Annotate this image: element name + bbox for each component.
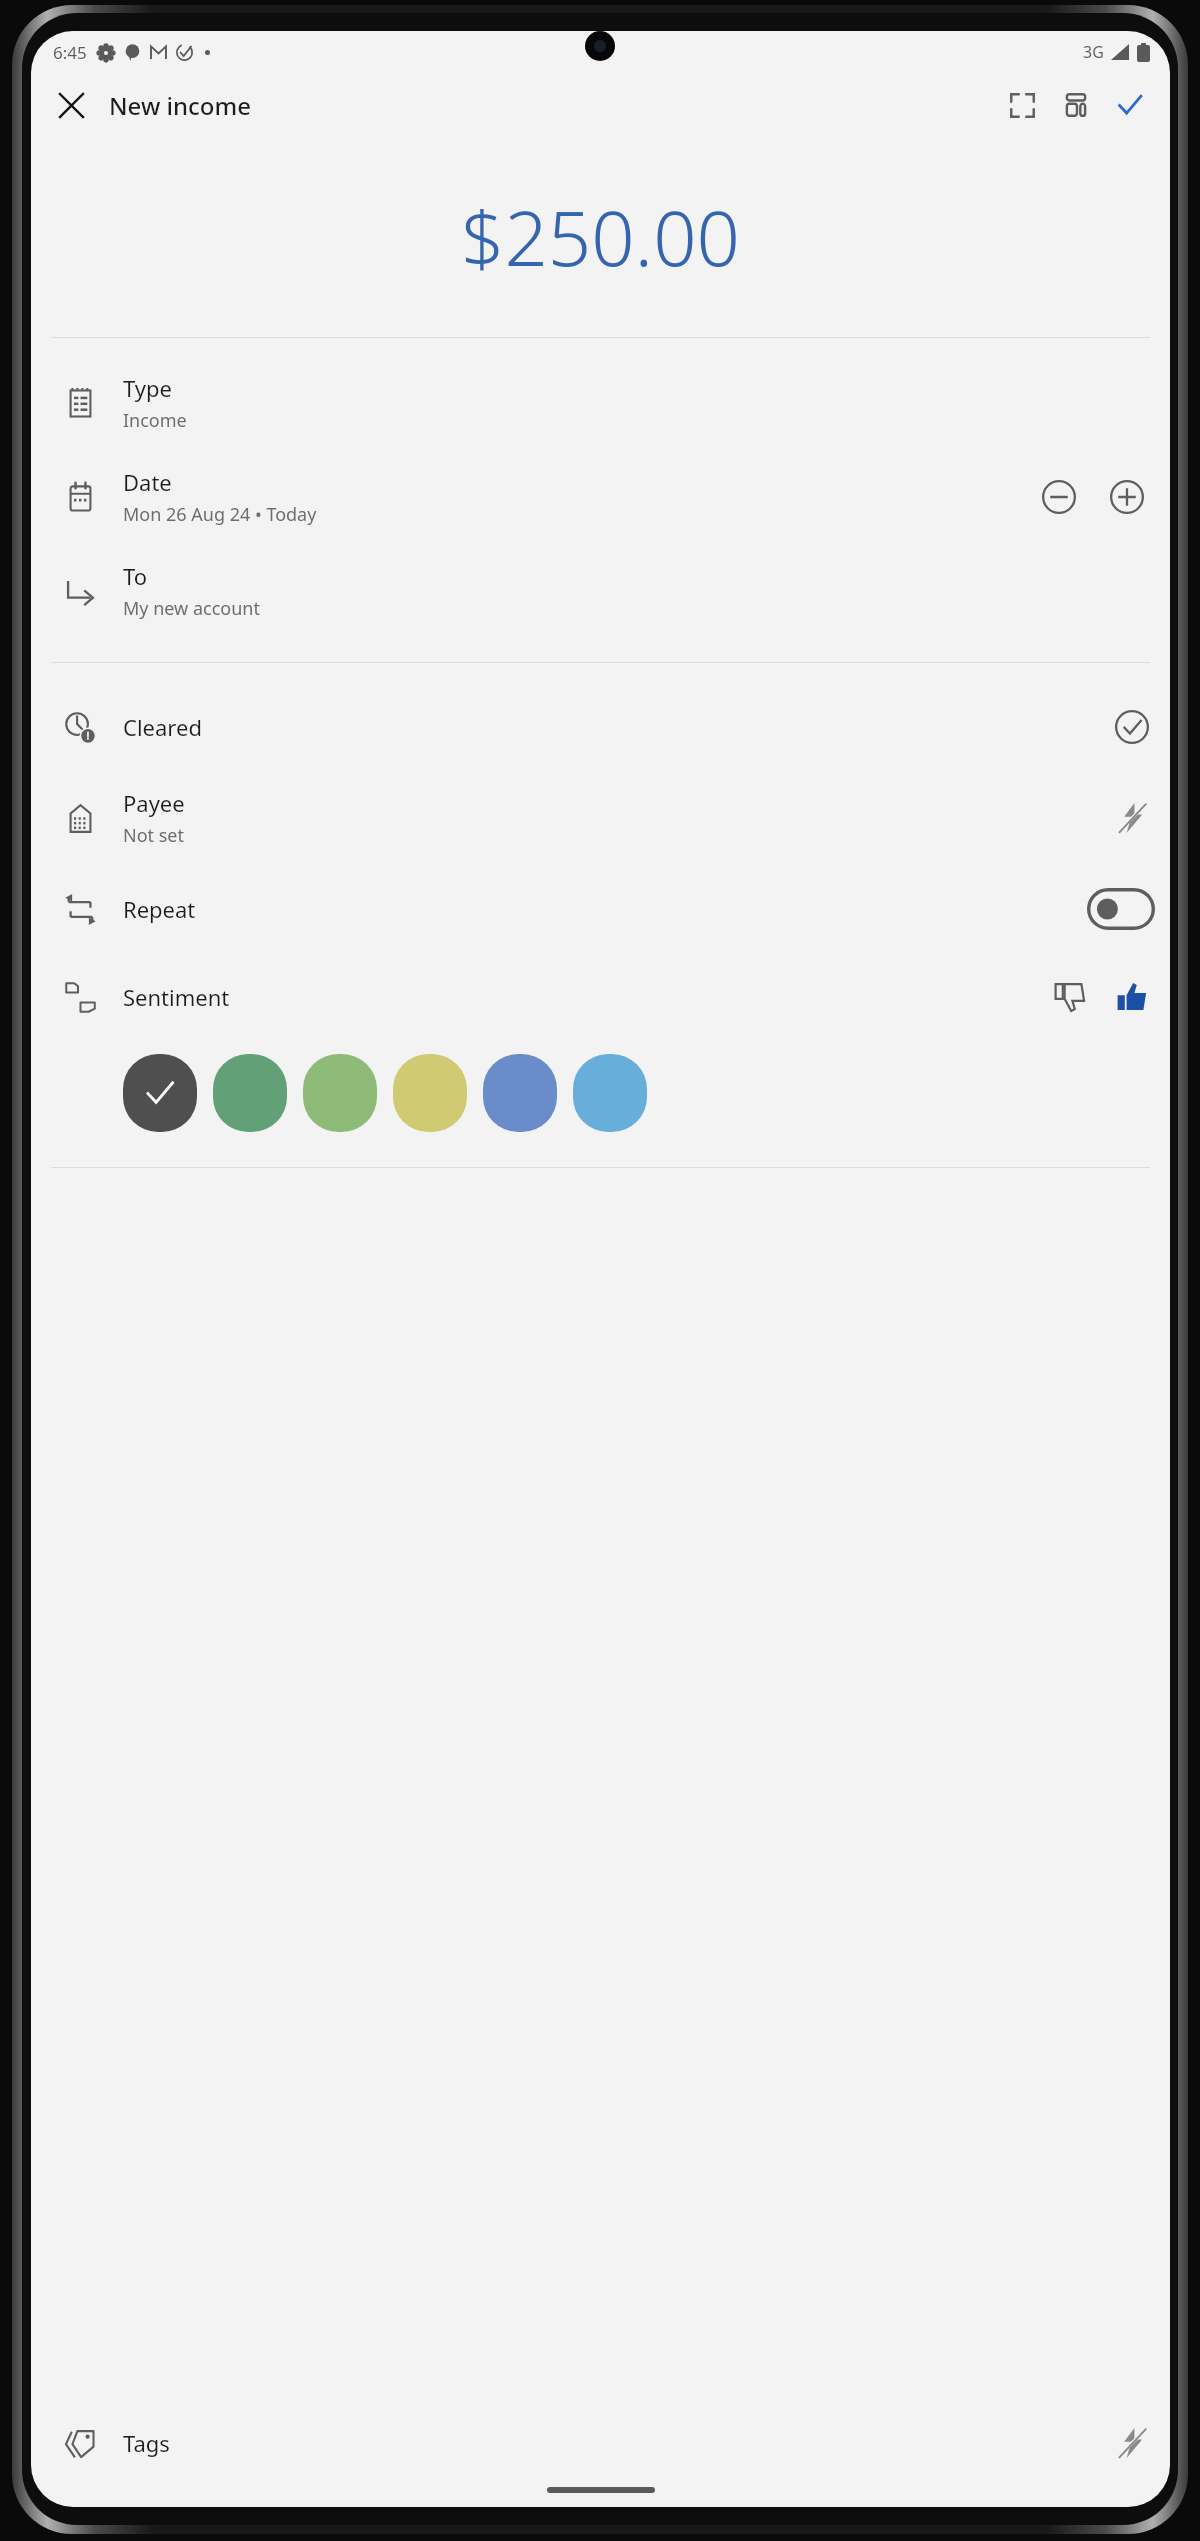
button[interactable]: Colour 3	[303, 1054, 377, 1132]
button[interactable]: Colour 6	[573, 1054, 647, 1132]
button[interactable]: Cleared	[1104, 699, 1160, 755]
staticText: Date	[123, 467, 172, 497]
button[interactable]: Repeat toggle	[1084, 885, 1158, 933]
staticText: New income	[109, 89, 252, 122]
button[interactable]: Date	[31, 450, 1170, 544]
staticText: My new account	[123, 596, 260, 621]
button[interactable]: Increase date	[1100, 470, 1154, 524]
button[interactable]: Colour 1	[123, 1054, 197, 1132]
staticText: Cleared	[123, 712, 202, 742]
button[interactable]: Tags	[31, 2399, 1170, 2487]
button[interactable]: Thumb down	[1042, 969, 1098, 1025]
staticText: Payee	[123, 788, 185, 818]
button[interactable]: Colour 5	[483, 1054, 557, 1132]
button[interactable]: Fullscreen	[996, 79, 1048, 131]
staticText: Tags	[123, 2428, 170, 2458]
button[interactable]: Decrease date	[1032, 470, 1086, 524]
staticText: $250.00	[461, 185, 740, 289]
button[interactable]: $250.00	[31, 137, 1170, 337]
button[interactable]: Payee shortcut	[1104, 790, 1160, 846]
staticText: 6:45	[53, 41, 87, 64]
button[interactable]: Colour 4	[393, 1054, 467, 1132]
button[interactable]: To	[31, 544, 1170, 638]
button[interactable]: Thumb up	[1104, 969, 1160, 1025]
button[interactable]: Sentiment	[31, 953, 1170, 1041]
button[interactable]: Payee	[31, 771, 1170, 865]
staticText: Type	[123, 373, 172, 403]
staticText: Not set	[123, 823, 185, 848]
button[interactable]: Layout	[1050, 79, 1102, 131]
staticText: Income	[123, 408, 187, 433]
button[interactable]: Close	[45, 79, 97, 131]
button[interactable]: Colour 2	[213, 1054, 287, 1132]
button[interactable]: Tags shortcut	[1104, 2415, 1160, 2471]
button[interactable]: Cleared	[31, 683, 1170, 771]
staticText: Sentiment	[123, 982, 230, 1012]
staticText: 3G	[1083, 41, 1104, 63]
staticText: Repeat	[123, 894, 196, 924]
button[interactable]: Type	[31, 356, 1170, 450]
staticText: To	[123, 561, 148, 591]
staticText: Mon 26 Aug 24 • Today	[123, 502, 317, 527]
button[interactable]: Repeat	[31, 865, 1170, 953]
button[interactable]: Save	[1104, 79, 1156, 131]
